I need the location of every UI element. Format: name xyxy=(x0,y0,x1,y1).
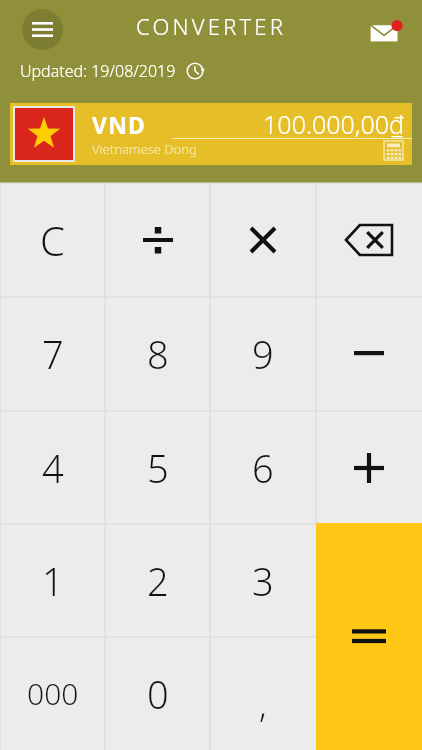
button[interactable]: 4 xyxy=(0,411,105,524)
button[interactable]: Equals xyxy=(316,523,422,750)
button[interactable]: 8 xyxy=(105,297,210,411)
staticText: , xyxy=(259,681,267,727)
staticText: Vietnamese Dong xyxy=(92,140,197,158)
button[interactable]: C xyxy=(0,183,105,297)
button[interactable]: Backspace xyxy=(316,183,422,297)
staticText: CONVERTER xyxy=(136,11,287,41)
button[interactable]: 9 xyxy=(210,297,316,411)
button[interactable]: 7 xyxy=(0,297,105,411)
button[interactable]: 2 xyxy=(105,524,210,637)
button[interactable]: Calculator xyxy=(382,139,404,161)
staticText: 000 xyxy=(27,673,79,714)
button[interactable]: VND xyxy=(10,103,412,165)
button[interactable]: 000 xyxy=(0,637,105,750)
staticText: 7 xyxy=(42,328,64,380)
button[interactable]: Menu xyxy=(22,9,63,50)
staticText: 9 xyxy=(252,328,274,380)
staticText: 100.000,00₫ xyxy=(263,107,404,141)
button[interactable]: Refresh rates xyxy=(184,60,206,82)
button[interactable]: Messages xyxy=(364,5,412,53)
staticText: 6 xyxy=(252,442,274,494)
staticText: 3 xyxy=(252,555,274,607)
staticText: VND xyxy=(92,109,147,140)
button[interactable]: 0 xyxy=(105,637,210,750)
button[interactable]: , xyxy=(210,637,316,750)
staticText: C xyxy=(40,213,65,267)
staticText: 0 xyxy=(147,668,169,720)
staticText: 1 xyxy=(42,555,64,607)
button[interactable] xyxy=(316,297,422,411)
staticText: Updated: 19/08/2019 xyxy=(20,60,176,82)
button[interactable]: 6 xyxy=(210,411,316,524)
button[interactable] xyxy=(316,411,422,524)
staticText: 2 xyxy=(147,555,169,607)
button[interactable]: 1 xyxy=(0,524,105,637)
other: Backspace xyxy=(346,225,392,255)
button[interactable]: 3 xyxy=(210,524,316,637)
staticText: 4 xyxy=(42,442,64,494)
button[interactable]: 5 xyxy=(105,411,210,524)
button[interactable] xyxy=(105,183,210,297)
button[interactable] xyxy=(210,183,316,297)
staticText: 8 xyxy=(147,328,169,380)
staticText: 5 xyxy=(147,442,169,494)
